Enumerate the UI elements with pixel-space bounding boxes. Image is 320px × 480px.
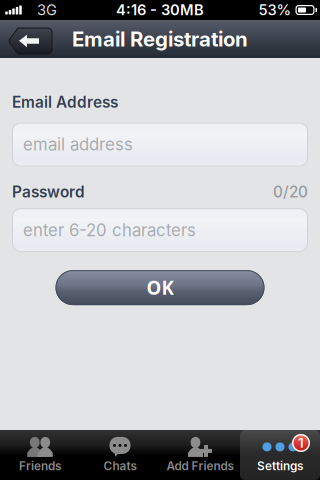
button[interactable]: Back	[8, 28, 52, 54]
button[interactable]: OK	[55, 270, 264, 305]
staticText: 53%	[258, 1, 291, 19]
staticText: 4:16 - 30MB	[116, 1, 204, 19]
button[interactable]: Friends	[0, 430, 80, 480]
staticText: Password	[12, 183, 85, 201]
staticText: enter 6-20 characters	[23, 220, 196, 240]
staticText: 0/20	[273, 183, 308, 201]
staticText: Email Registration	[72, 27, 248, 51]
button[interactable]: Chats	[80, 430, 160, 480]
button[interactable]: Settings	[240, 430, 320, 480]
staticText: 1	[298, 435, 304, 451]
staticText: 3G	[37, 1, 57, 19]
staticText: Add Friends	[166, 459, 233, 473]
staticText: Email Address	[12, 93, 118, 112]
staticText: OK	[146, 275, 173, 300]
button[interactable]: Add Friends	[160, 430, 240, 480]
staticText: Chats	[103, 459, 136, 473]
staticText: Settings	[257, 459, 303, 473]
staticText: Friends	[19, 459, 61, 473]
staticText: email address	[23, 134, 133, 155]
